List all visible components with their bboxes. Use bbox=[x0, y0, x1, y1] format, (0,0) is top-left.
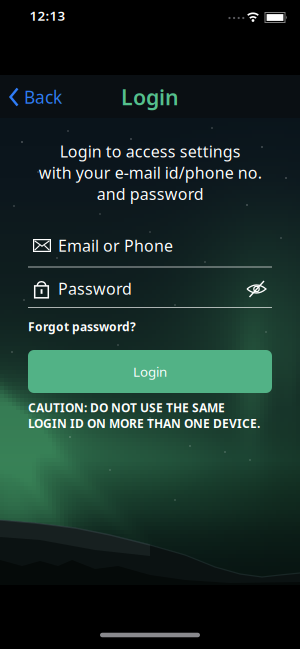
staticText: Login bbox=[133, 363, 167, 380]
staticText: Forgot password? bbox=[28, 318, 136, 334]
staticText: Password bbox=[58, 278, 132, 299]
staticText: 12:13 bbox=[29, 7, 65, 24]
button[interactable]: Email or Phone bbox=[28, 232, 272, 258]
button[interactable]: Password bbox=[28, 275, 272, 301]
button[interactable]: Home bbox=[100, 633, 200, 637]
button[interactable]: Login bbox=[28, 350, 272, 393]
button[interactable]: Forgot password? bbox=[28, 318, 272, 334]
staticText: Email or Phone bbox=[58, 235, 173, 256]
button[interactable]: Back bbox=[4, 85, 62, 109]
button[interactable]: Show password bbox=[244, 278, 268, 300]
staticText: CAUTION: DO NOT USE THE SAME LOGIN ID ON… bbox=[28, 400, 260, 431]
staticText: Login bbox=[121, 83, 179, 111]
staticText: Back bbox=[24, 85, 62, 108]
staticText: Login to access settings with your e-mai… bbox=[38, 141, 261, 204]
